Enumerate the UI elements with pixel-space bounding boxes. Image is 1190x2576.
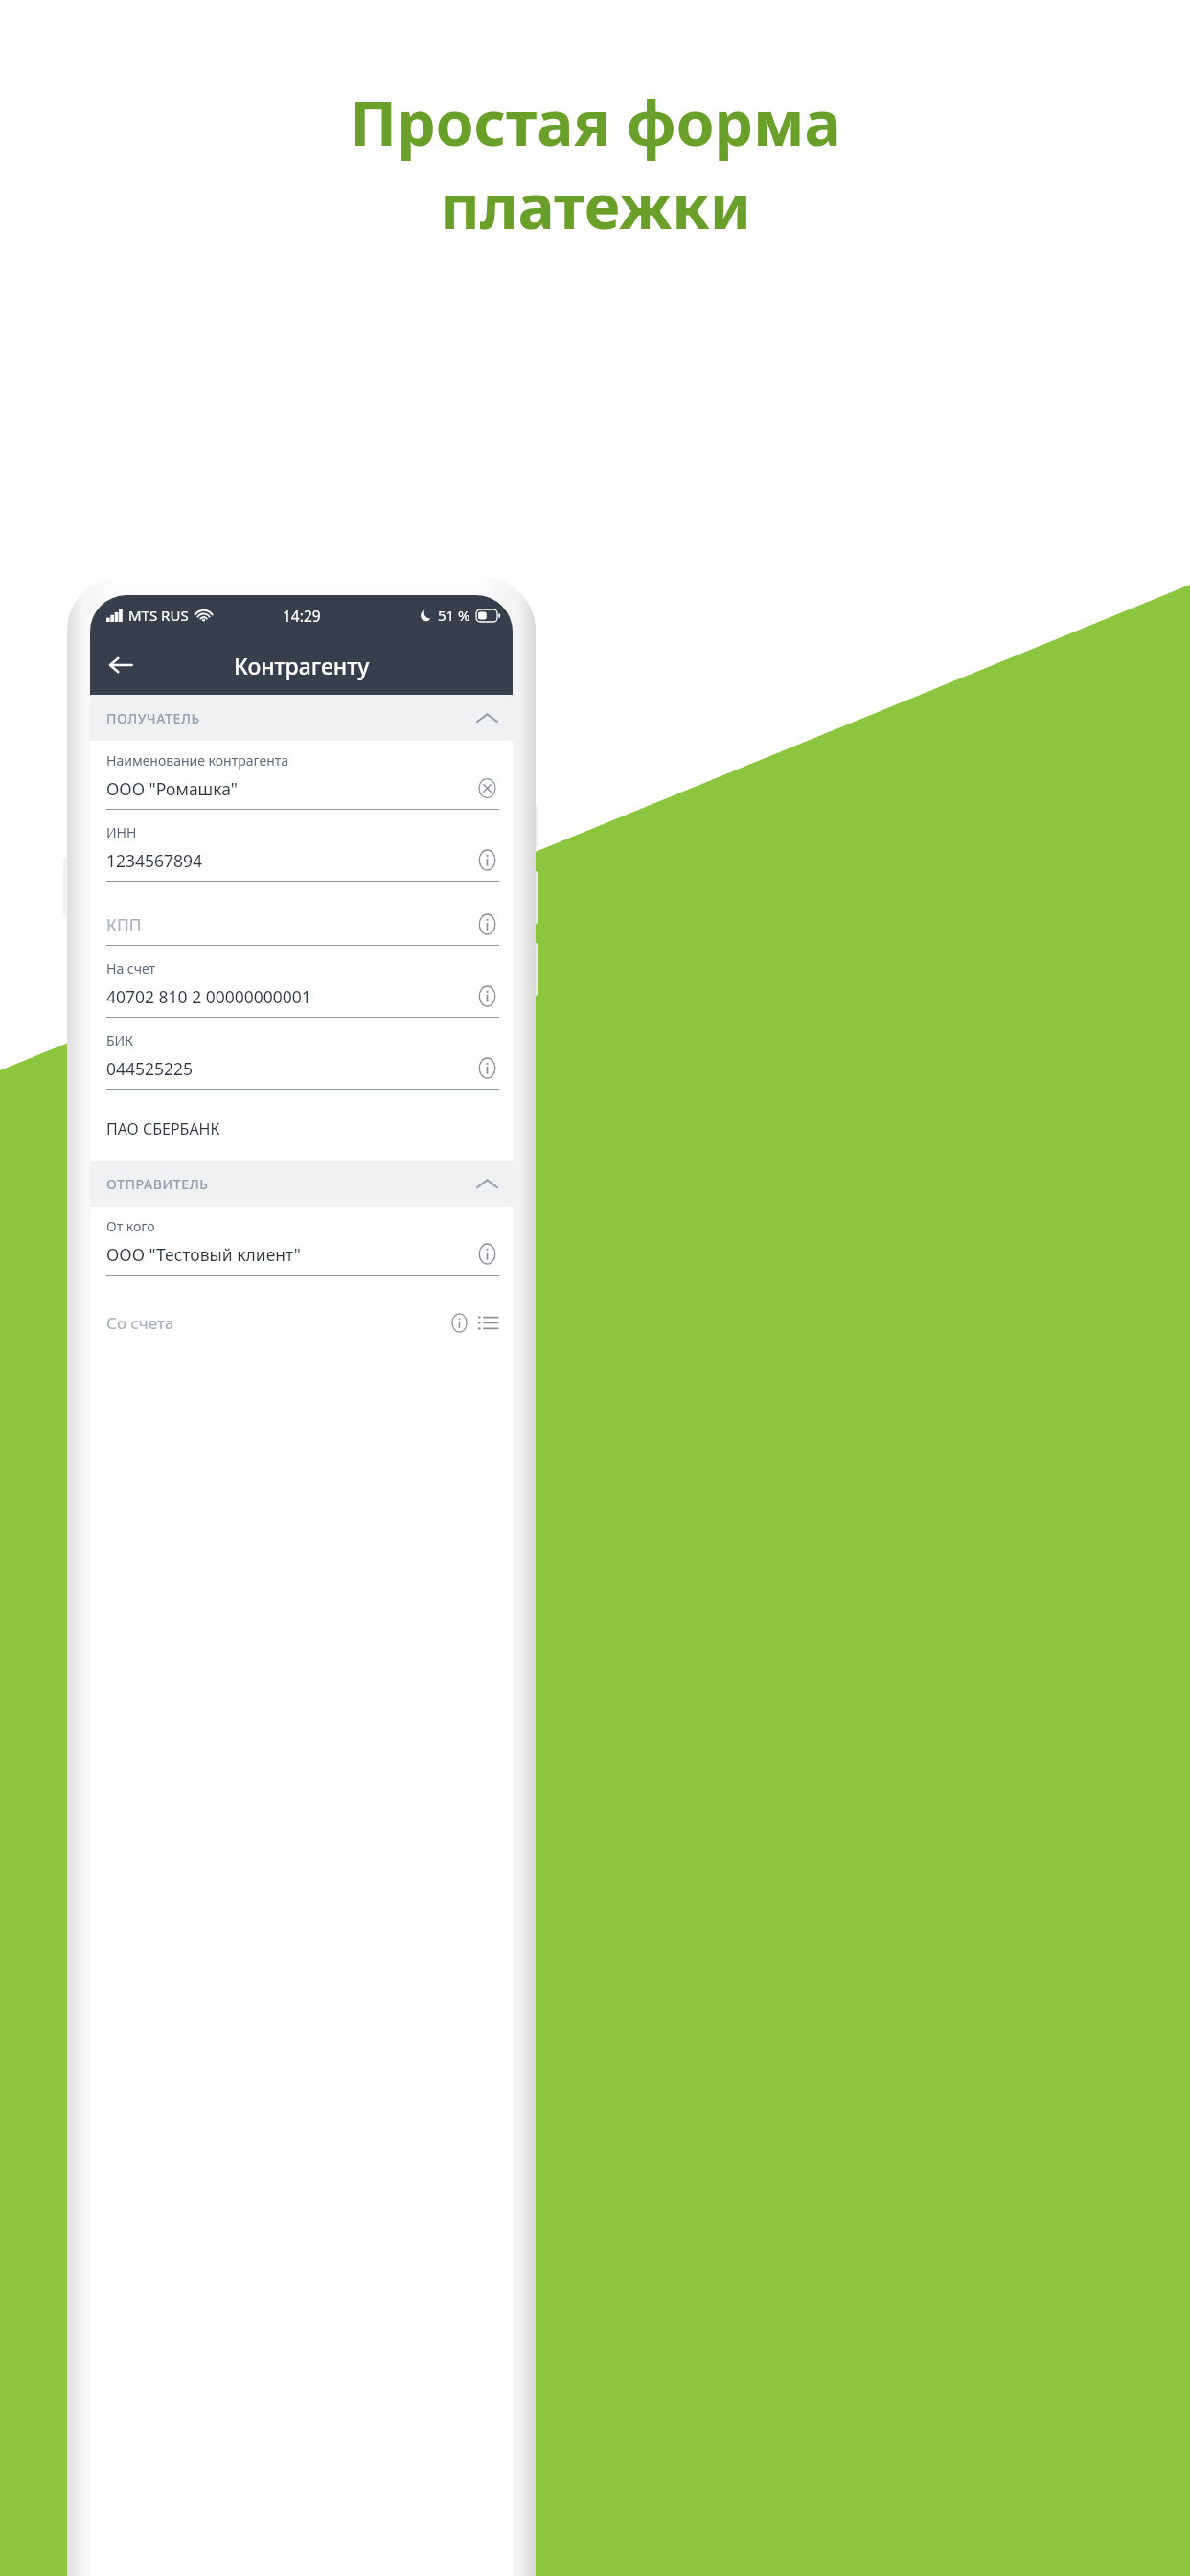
- button[interactable]: Info: [475, 912, 499, 936]
- button[interactable]: Choose account: [477, 1312, 499, 1334]
- staticText: ПОЛУЧАТЕЛЬ: [106, 709, 477, 727]
- staticText: ООО "Тестовый клиент": [106, 1243, 475, 1266]
- button[interactable]: Clear: [475, 776, 499, 800]
- button[interactable]: ПОЛУЧАТЕЛЬ: [90, 695, 513, 741]
- staticText: 1234567894: [106, 849, 475, 872]
- staticText: ПАО СБЕРБАНК: [106, 1118, 220, 1139]
- button[interactable]: ИНН: [90, 823, 513, 895]
- staticText: КПП: [106, 913, 475, 936]
- button[interactable]: ОТПРАВИТЕЛЬ: [90, 1161, 513, 1207]
- button[interactable]: На счет: [90, 959, 513, 1031]
- staticText: Контрагенту: [234, 651, 370, 680]
- staticText: БИК: [106, 1031, 133, 1049]
- button[interactable]: Info: [448, 1312, 470, 1334]
- button[interactable]: Back: [98, 642, 144, 688]
- button[interactable]: От кого: [90, 1217, 513, 1289]
- button[interactable]: КПП: [90, 895, 513, 959]
- staticText: ООО "Ромашка": [106, 777, 475, 800]
- button[interactable]: Info: [475, 1242, 499, 1266]
- button[interactable]: БИК: [90, 1031, 513, 1103]
- staticText: ИНН: [106, 823, 137, 841]
- staticText: MTS RUS: [128, 606, 189, 625]
- button[interactable]: Наименование контрагента: [90, 751, 513, 823]
- button[interactable]: Info: [475, 984, 499, 1008]
- staticText: Наименование контрагента: [106, 751, 289, 770]
- staticText: платежки: [440, 164, 751, 247]
- staticText: 51 %: [438, 606, 470, 625]
- staticText: 14:29: [283, 606, 321, 626]
- staticText: 044525225: [106, 1057, 475, 1080]
- button[interactable]: Info: [475, 1056, 499, 1080]
- staticText: На счет: [106, 959, 156, 977]
- staticText: Простая форма: [350, 80, 841, 164]
- button[interactable]: Info: [475, 848, 499, 872]
- staticText: ОТПРАВИТЕЛЬ: [106, 1175, 477, 1193]
- staticText: 40702 810 2 00000000001: [106, 985, 475, 1008]
- staticText: От кого: [106, 1217, 155, 1235]
- staticText: Со счета: [106, 1312, 448, 1334]
